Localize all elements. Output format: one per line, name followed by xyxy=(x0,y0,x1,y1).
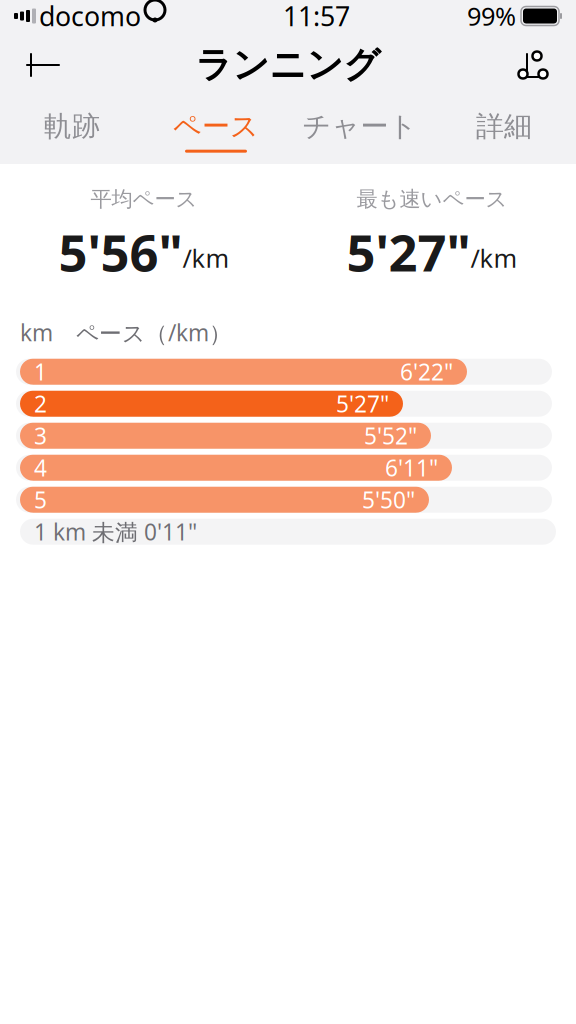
staticText: 1 xyxy=(34,357,47,387)
staticText: 5'27" xyxy=(336,389,389,419)
staticText: /km xyxy=(182,241,229,275)
staticText: ペース xyxy=(173,109,259,144)
button[interactable]: 詳細 xyxy=(432,98,576,164)
staticText: 6'11" xyxy=(385,453,438,483)
staticText: 3 xyxy=(34,421,47,451)
staticText: 最も速いペース xyxy=(356,186,507,212)
staticText: 99% xyxy=(467,0,516,33)
staticText: 1 km 未満 0'11" xyxy=(34,517,197,547)
staticText: 5'27" xyxy=(346,218,470,285)
button[interactable]: チャート xyxy=(288,98,432,164)
staticText: km ペース（/km） xyxy=(20,317,232,348)
staticText: 平均ペース xyxy=(90,186,197,212)
staticText: 11:57 xyxy=(283,0,350,34)
staticText: 6'22" xyxy=(400,357,453,387)
staticText: 5'50" xyxy=(362,485,415,515)
staticText: 軌跡 xyxy=(44,109,100,144)
button[interactable]: 軌跡 xyxy=(0,98,144,164)
staticText: ランニング xyxy=(195,43,380,87)
staticText: 5 xyxy=(34,485,47,515)
button[interactable]: 共有 xyxy=(502,37,564,93)
staticText: チャート xyxy=(302,109,417,144)
staticText: docomo xyxy=(39,0,141,34)
staticText: 詳細 xyxy=(476,109,532,144)
staticText: 4 xyxy=(34,453,47,483)
button[interactable]: ペース xyxy=(144,98,288,164)
button[interactable]: 戻る xyxy=(12,37,74,93)
staticText: /km xyxy=(470,241,517,275)
staticText: 2 xyxy=(34,389,47,419)
staticText: 5'56" xyxy=(58,218,182,285)
staticText: 5'52" xyxy=(364,421,417,451)
